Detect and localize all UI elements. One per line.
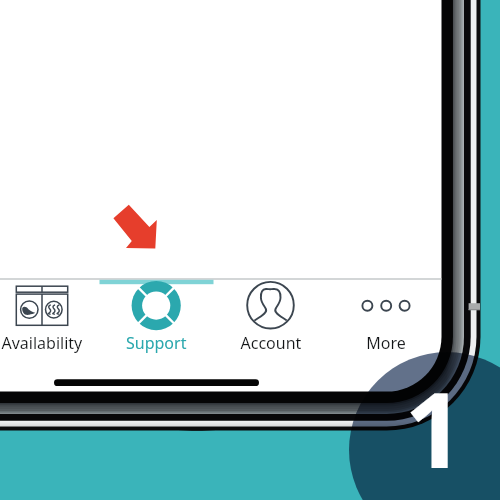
button[interactable]: Account xyxy=(214,280,328,352)
button[interactable]: Availability xyxy=(0,280,99,352)
button[interactable]: Support xyxy=(100,280,214,352)
button[interactable]: More xyxy=(329,280,443,352)
